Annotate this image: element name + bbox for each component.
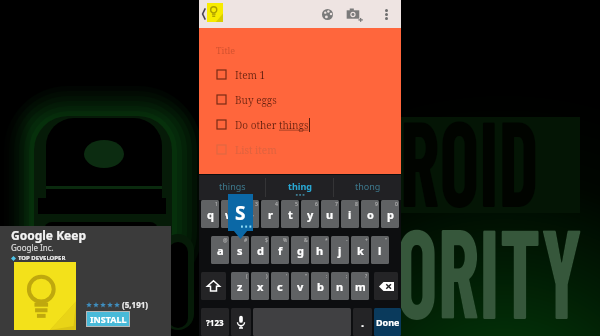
staticText: &: [304, 237, 308, 244]
staticText: d: [257, 243, 264, 258]
staticText: ?: [365, 273, 368, 280]
staticText: %: [283, 237, 288, 244]
staticText: Do other: [235, 118, 279, 132]
button[interactable]: Back: [199, 0, 208, 28]
button[interactable]: $: [251, 236, 269, 264]
staticText: $: [265, 237, 268, 244]
staticText: (5,191): [122, 299, 149, 310]
staticText: .: [361, 315, 365, 330]
button[interactable]: 8: [341, 200, 359, 228]
button[interactable]: :: [311, 272, 329, 300]
button[interactable]: things: [199, 175, 265, 200]
button[interactable]: Backspace: [374, 272, 398, 300]
staticText: 0: [395, 201, 398, 208]
button[interactable]: %: [271, 236, 289, 264]
staticText: 4: [275, 201, 278, 208]
button[interactable]: ): [251, 272, 269, 300]
button[interactable]: 9: [361, 200, 379, 228]
staticText: Title: [216, 44, 236, 56]
button[interactable]: ?: [351, 272, 369, 300]
button[interactable]: 7: [321, 200, 339, 228]
button[interactable]: List item: [199, 137, 401, 162]
staticText: v: [297, 279, 304, 294]
staticText: Done: [376, 316, 400, 328]
button[interactable]: Do other: [199, 112, 401, 137]
button[interactable]: @: [211, 236, 229, 264]
staticText: q: [207, 207, 214, 222]
button[interactable]: Change color: [316, 0, 338, 28]
staticText: s: [237, 243, 243, 258]
staticText: 2: [235, 201, 238, 208]
staticText: p: [387, 207, 394, 222]
staticText: 9: [375, 201, 378, 208]
button[interactable]: Add photo: [342, 0, 366, 28]
button[interactable]: 0: [381, 200, 399, 228]
staticText: l: [378, 243, 382, 258]
staticText: 5: [295, 201, 298, 208]
button[interactable]: ": [291, 272, 309, 300]
staticText: h: [316, 243, 324, 258]
staticText: S: [235, 200, 246, 226]
button[interactable]: INSTALL: [87, 312, 129, 326]
staticText: w: [225, 207, 235, 222]
button[interactable]: 2: [221, 200, 239, 228]
staticText: 1: [215, 201, 218, 208]
staticText: m: [355, 279, 366, 294]
staticText: u: [326, 207, 334, 222]
staticText: x: [257, 279, 264, 294]
staticText: #: [244, 237, 248, 244]
button[interactable]: 4: [261, 200, 279, 228]
button[interactable]: Shift: [201, 272, 226, 300]
button[interactable]: .: [353, 308, 372, 336]
button[interactable]: Item 1: [199, 62, 401, 87]
button[interactable]: More options: [377, 0, 395, 28]
staticText: ;: [346, 273, 348, 280]
button[interactable]: thing: [266, 175, 333, 200]
button[interactable]: 5: [281, 200, 299, 228]
staticText: n: [336, 279, 344, 294]
button[interactable]: thong: [334, 175, 401, 200]
button[interactable]: Buy eggs: [199, 87, 401, 112]
staticText: ORITY: [396, 193, 583, 336]
staticText: ?123: [206, 317, 224, 328]
staticText: 3: [255, 201, 258, 208]
staticText: i: [348, 207, 352, 222]
staticText: z: [237, 279, 243, 294]
button[interactable]: ': [271, 272, 289, 300]
staticText: ": [385, 237, 388, 244]
button[interactable]: ": [371, 236, 389, 264]
staticText: 6: [315, 201, 318, 208]
button[interactable]: ?123: [201, 308, 229, 336]
button[interactable]: #: [231, 236, 249, 264]
staticText: r: [268, 207, 273, 222]
staticText: e: [247, 207, 254, 222]
button[interactable]: Voice input: [231, 308, 251, 336]
button[interactable]: &: [291, 236, 309, 264]
staticText: (: [246, 273, 248, 280]
staticText: f: [278, 243, 283, 258]
staticText: g: [297, 243, 304, 258]
staticText: b: [317, 279, 324, 294]
staticText: things: [279, 118, 309, 132]
staticText: a: [217, 243, 224, 258]
button[interactable]: ;: [331, 272, 349, 300]
button[interactable]: 6: [301, 200, 319, 228]
button[interactable]: +: [351, 236, 369, 264]
staticText: +: [365, 237, 368, 244]
staticText: Buy eggs: [235, 93, 277, 107]
button[interactable]: Done: [374, 308, 401, 336]
button[interactable]: (: [231, 272, 249, 300]
staticText: INSTALL: [90, 313, 127, 325]
button[interactable]: *: [311, 236, 329, 264]
staticText: -: [346, 237, 348, 244]
staticText: y: [307, 207, 314, 222]
button[interactable]: Google Keep: [207, 3, 223, 22]
staticText: thong: [355, 180, 381, 192]
button[interactable]: 1: [201, 200, 219, 228]
staticText: ": [305, 273, 308, 280]
button[interactable]: -: [331, 236, 349, 264]
staticText: j: [338, 243, 342, 258]
staticText: Google Keep: [11, 227, 87, 243]
button[interactable]: 3: [241, 200, 259, 228]
